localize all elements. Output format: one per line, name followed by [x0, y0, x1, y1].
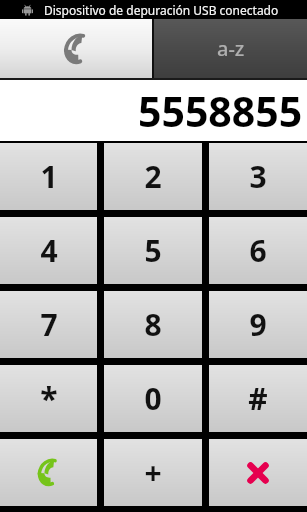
button[interactable]: *: [0, 365, 97, 432]
staticText: *: [40, 377, 58, 421]
button[interactable]: 0: [104, 365, 202, 432]
button[interactable]: 9: [209, 291, 307, 358]
button[interactable]: 3: [209, 143, 307, 210]
button[interactable]: Teclado: [0, 19, 152, 78]
button[interactable]: Borrar: [209, 439, 307, 506]
staticText: 4: [40, 230, 58, 271]
staticText: 6: [249, 230, 267, 271]
button[interactable]: 2: [104, 143, 202, 210]
button[interactable]: 8: [104, 291, 202, 358]
staticText: Dispositivo de depuración USB conectado: [44, 2, 279, 18]
button[interactable]: 7: [0, 291, 97, 358]
button[interactable]: 5558855: [0, 80, 307, 141]
staticText: a-z: [217, 35, 245, 62]
button[interactable]: +: [104, 439, 202, 506]
button[interactable]: a-z: [154, 19, 307, 78]
staticText: 5558855: [138, 83, 303, 139]
button[interactable]: 5: [104, 217, 202, 284]
staticText: 7: [40, 304, 58, 345]
staticText: 5: [144, 230, 162, 271]
staticText: +: [144, 452, 162, 493]
staticText: 3: [249, 156, 267, 197]
button[interactable]: 1: [0, 143, 97, 210]
staticText: 0: [144, 378, 162, 419]
button[interactable]: Llamar: [0, 439, 97, 506]
staticText: #: [248, 378, 268, 419]
staticText: 8: [144, 304, 162, 345]
staticText: 1: [40, 156, 58, 197]
staticText: 2: [144, 156, 162, 197]
button[interactable]: 4: [0, 217, 97, 284]
button[interactable]: 6: [209, 217, 307, 284]
staticText: 9: [249, 304, 267, 345]
button[interactable]: #: [209, 365, 307, 432]
